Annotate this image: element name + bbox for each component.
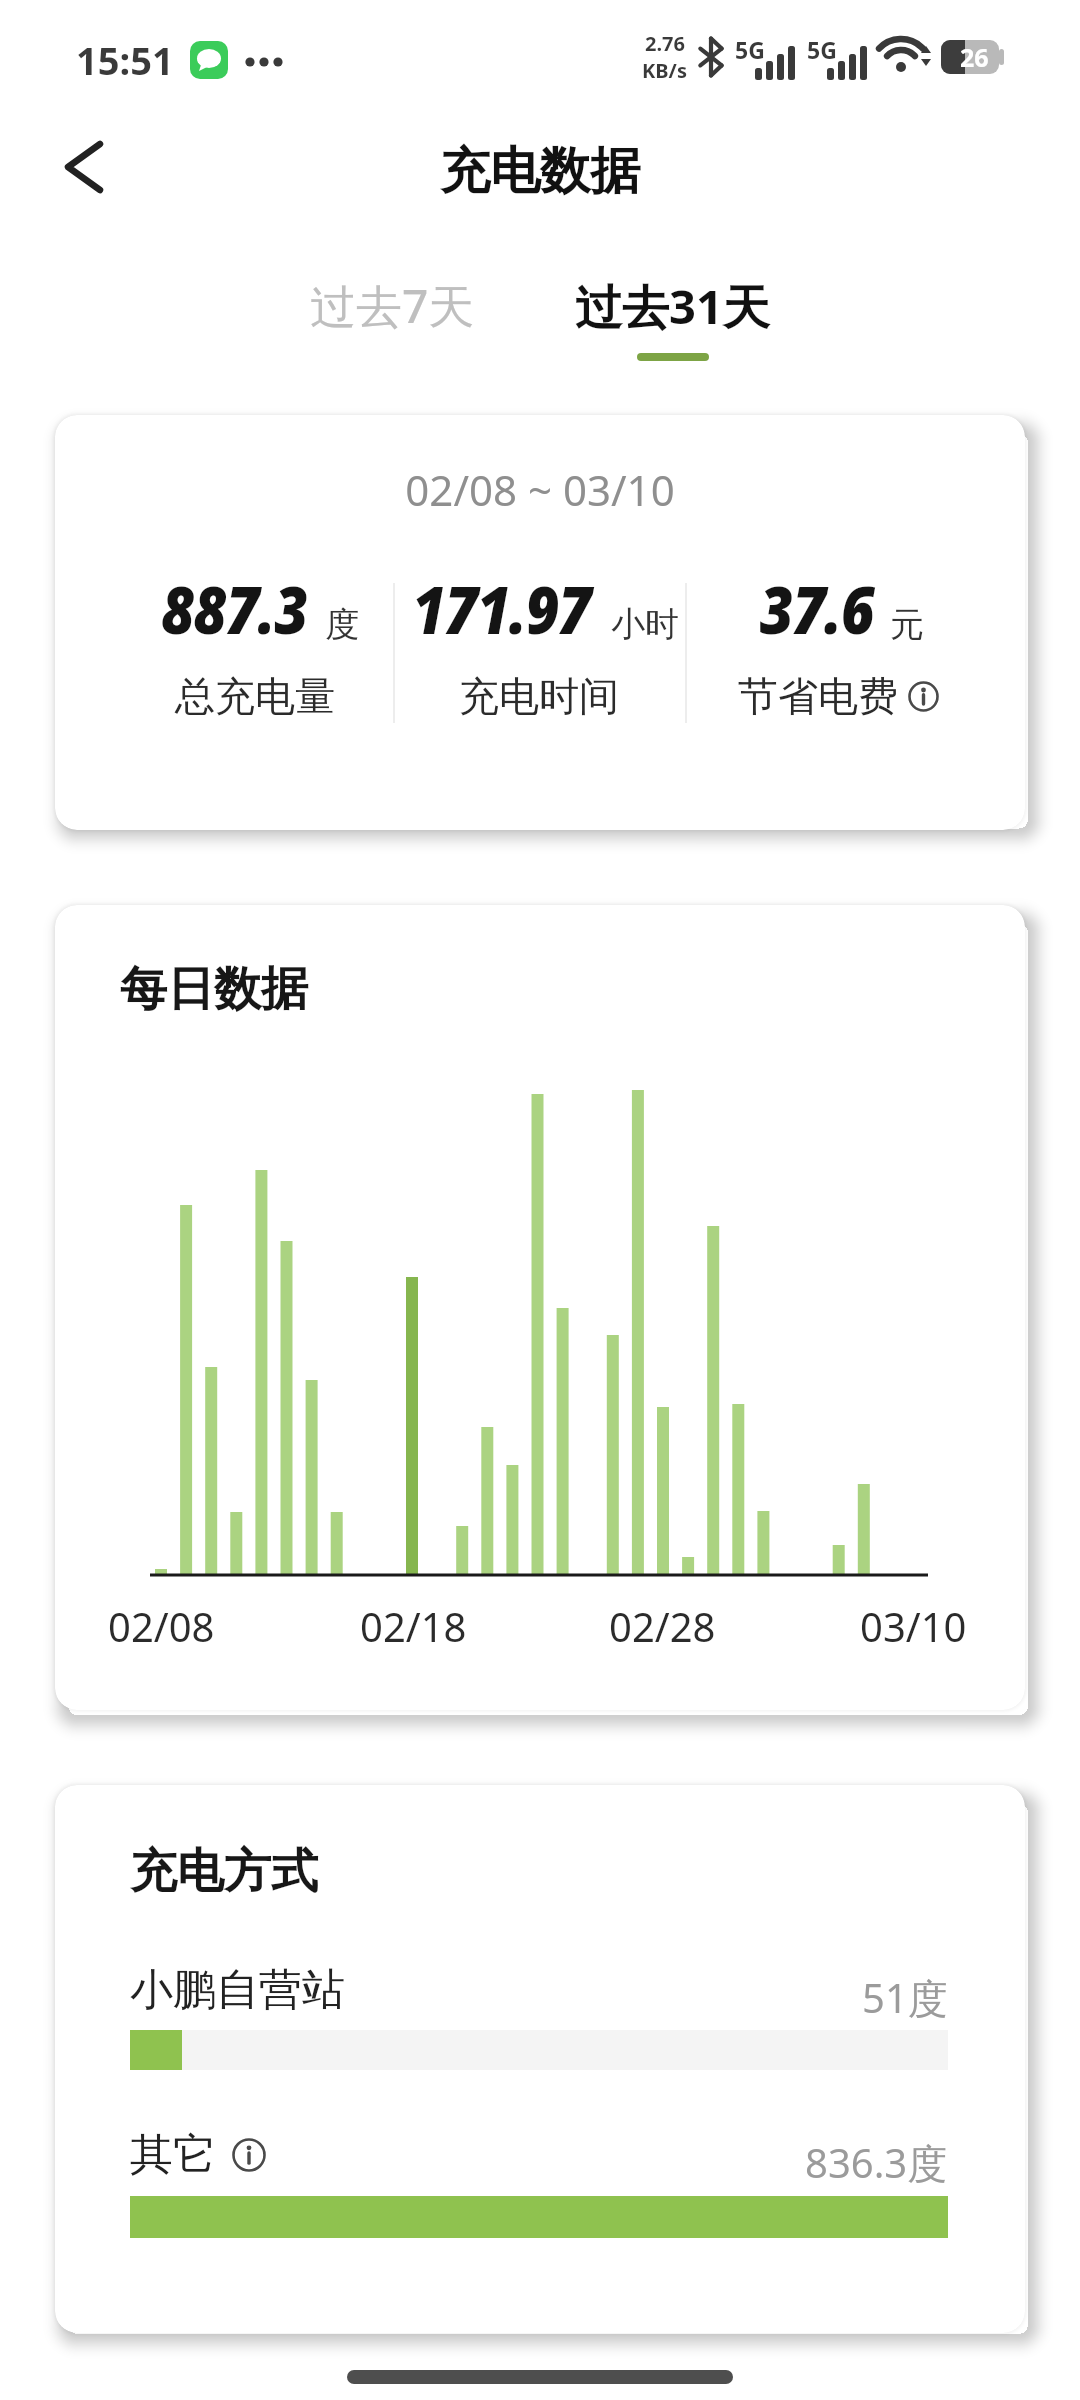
staticText: 26 [960,40,989,74]
staticText: 总充电量 [175,671,335,721]
staticText: 过去31天 [575,274,770,338]
button[interactable] [48,132,118,202]
button[interactable]: 过去7天 [310,274,475,337]
staticText: 节省电费 [738,671,898,721]
staticText: 171.97 [412,563,591,653]
staticText: 15:51 [76,34,174,86]
staticText: 02/08 [108,1599,215,1653]
staticText: 02/28 [609,1599,716,1653]
staticText: KB/s [642,57,687,84]
button[interactable]: 171.97 [393,563,685,721]
staticText: 充电时间 [459,671,619,721]
staticText: 充电方式 [130,1842,318,1901]
staticText: 元 [890,603,924,646]
staticText: 5G [807,34,837,65]
staticText: 过去7天 [310,274,475,337]
staticText: 02/18 [360,1599,467,1653]
staticText: 小时 [611,603,679,646]
staticText: 836.3度 [805,2135,948,2190]
button[interactable]: 887.3 [117,563,393,721]
staticText: 02/08 ~ 03/10 [55,461,1025,518]
staticText: 充电数据 [440,140,640,203]
staticText: 度 [325,603,359,646]
staticText: 37.6 [760,563,874,653]
staticText: 其它 [130,2128,216,2182]
staticText: 每日数据 [120,960,308,1019]
staticText: 小鹏自营站 [130,1963,345,2017]
staticText: 887.3 [161,563,307,653]
staticText: 2.76 [645,30,685,57]
button[interactable]: 过去31天 [575,274,770,361]
staticText: 5G [735,34,765,65]
button[interactable]: 37.6 [685,563,991,721]
staticText: 03/10 [860,1599,967,1653]
staticText: 51度 [862,1970,948,2025]
